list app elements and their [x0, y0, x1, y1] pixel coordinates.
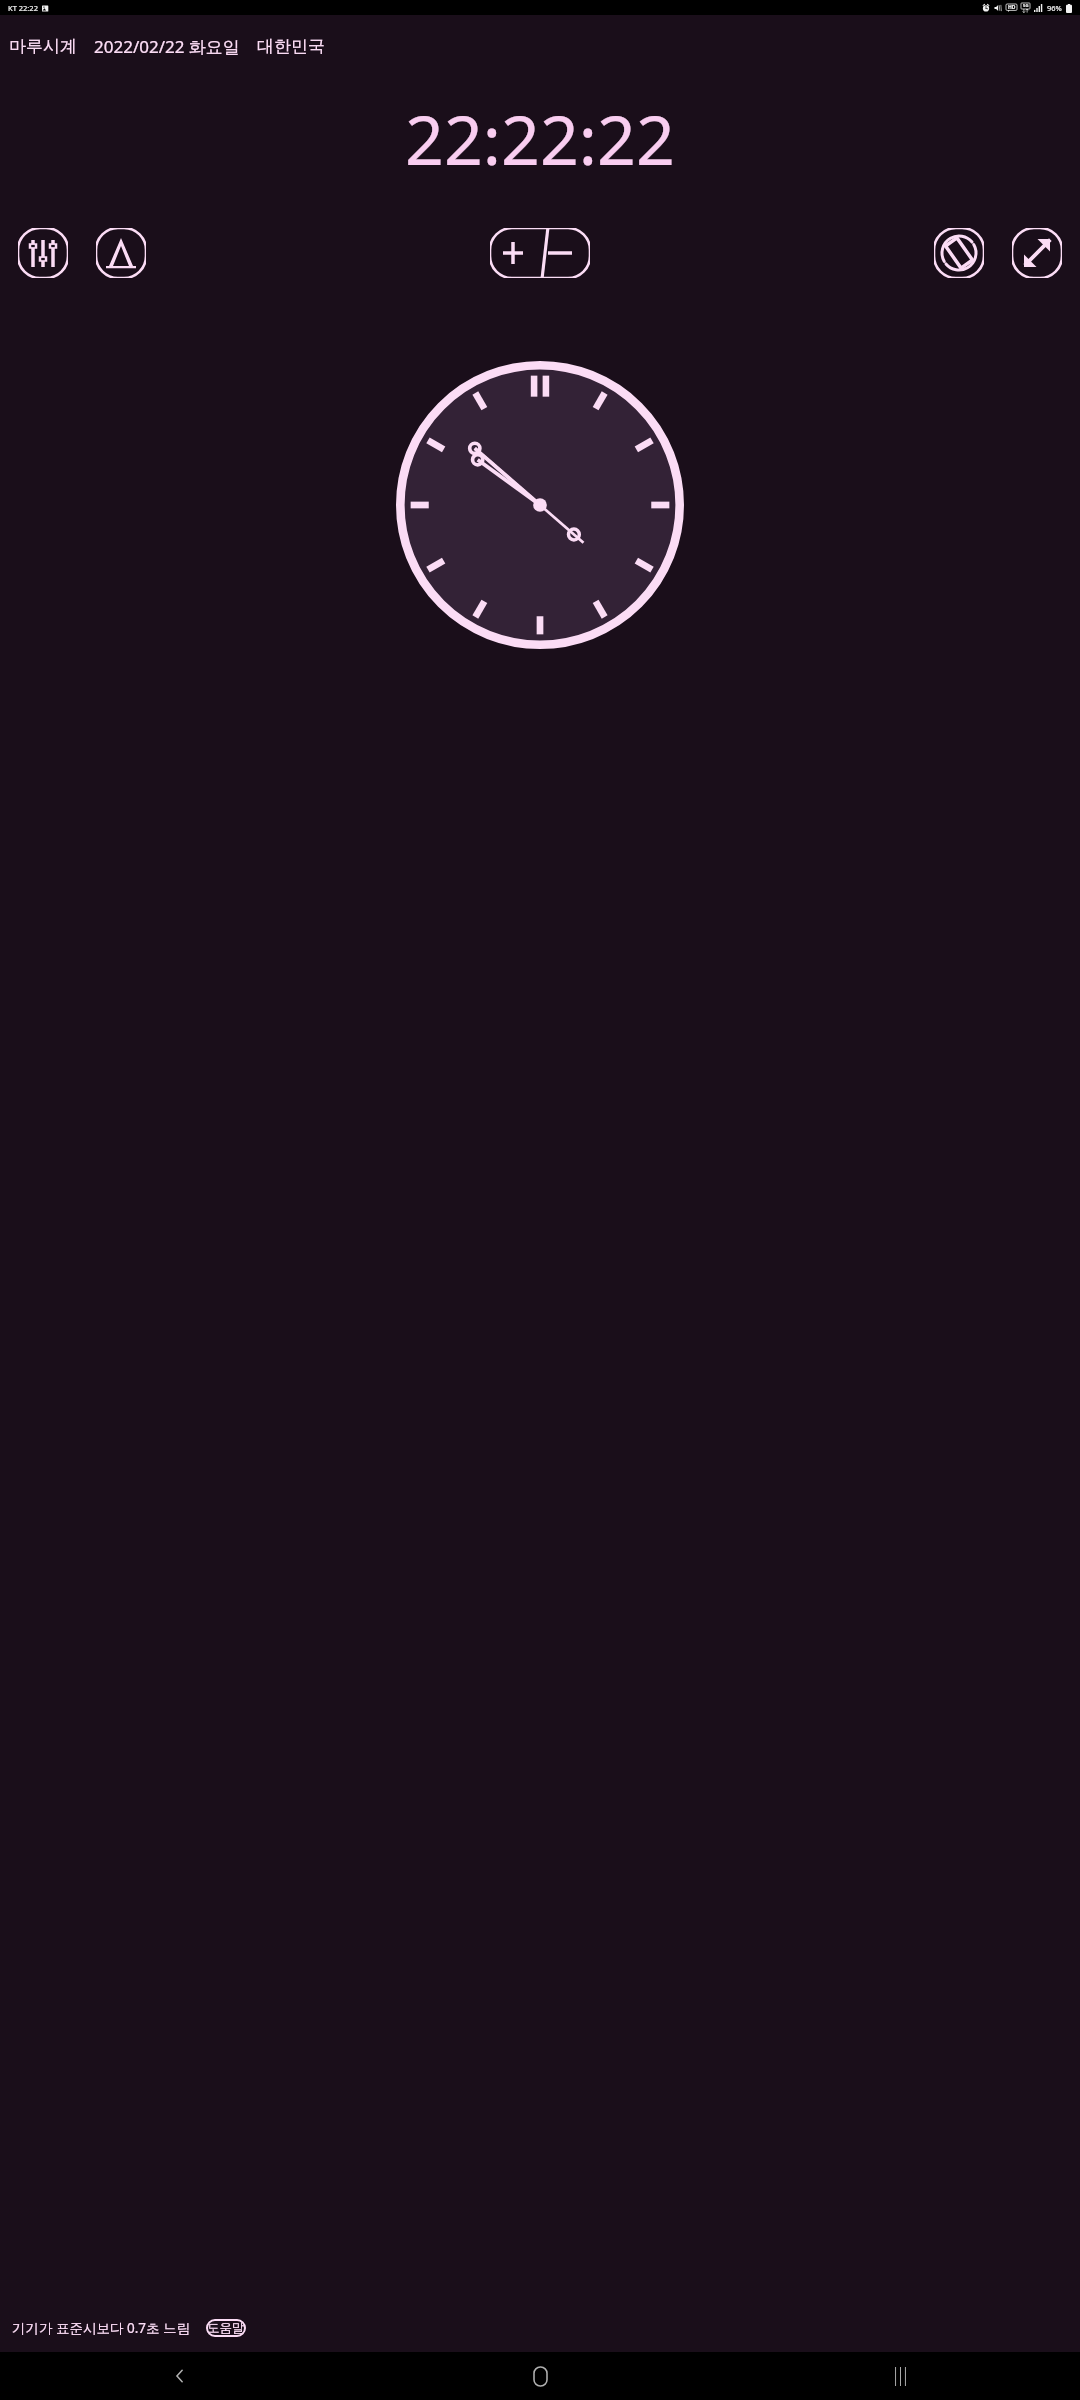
staticText: 기기가 표준시보다 0.7초 느림	[12, 2319, 191, 2337]
staticText: 2022/02/22 화요일	[94, 35, 240, 58]
staticText: 22:22:22	[405, 92, 675, 185]
button[interactable]: Home	[360, 2352, 720, 2400]
button[interactable]: Fullscreen	[1012, 228, 1062, 278]
staticText: HD	[1008, 4, 1016, 11]
button[interactable]: 도움말	[201, 2318, 251, 2338]
staticText: KT 22:22	[8, 3, 38, 13]
button[interactable]: Settings	[18, 228, 68, 278]
staticText: 도움말	[207, 2320, 245, 2336]
staticText: 대한민국	[257, 36, 325, 57]
staticText: 마루시계	[9, 36, 77, 57]
button[interactable]: Adjust	[490, 228, 590, 278]
staticText: 5G	[1023, 3, 1029, 9]
button[interactable]: Back	[0, 2352, 360, 2400]
button[interactable]: Rotate	[934, 228, 984, 278]
button[interactable]: Font	[96, 228, 146, 278]
staticText: 96%	[1047, 3, 1062, 13]
button[interactable]: Recents	[720, 2352, 1080, 2400]
